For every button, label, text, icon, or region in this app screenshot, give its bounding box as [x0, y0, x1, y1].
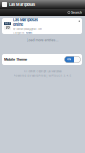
staticText: ON — [67, 58, 71, 61]
button[interactable]: Search — [68, 10, 85, 14]
staticText: OCT — [5, 22, 10, 25]
staticText: Categories: — [13, 31, 26, 34]
button[interactable]: Load more entries... — [26, 34, 58, 54]
staticText: Mobile Theme — [4, 57, 27, 62]
staticText: Las Mariposas — [9, 2, 35, 7]
staticText: by lasmariposas@gmail.com — [13, 28, 42, 30]
staticText: Powered by WordPress | WPtouch 3.4.5 — [13, 74, 71, 77]
button[interactable]: OCT — [0, 18, 85, 34]
button[interactable]: Menu — [2, 2, 7, 7]
staticText: All content Copyright Las Mariposas — [23, 70, 61, 73]
staticText: Las Mariposas online — [13, 18, 38, 27]
staticText: Load more entries... — [26, 38, 58, 42]
staticText: News — [26, 31, 32, 34]
staticText: Search — [71, 10, 82, 14]
staticText: 20 — [5, 26, 9, 29]
button[interactable]: Mobile Theme — [0, 54, 85, 65]
